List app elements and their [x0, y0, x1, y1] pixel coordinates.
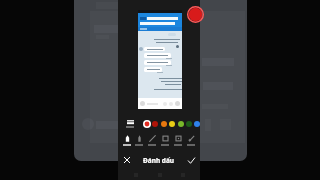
- button[interactable]: Nhãn dán: [171, 133, 184, 148]
- button[interactable]: Bút vẽ: [121, 133, 133, 148]
- button[interactable]: Navigation: [154, 169, 165, 180]
- button[interactable]: Hình vuông: [158, 133, 171, 148]
- button[interactable]: Colour: [158, 117, 170, 130]
- button[interactable]: Cancel: [121, 154, 133, 166]
- staticText: Đánh dấu: [143, 156, 175, 165]
- button[interactable]: Navigation: [130, 169, 141, 180]
- button[interactable]: Mũi tên: [145, 133, 158, 148]
- button[interactable]: Colour: [191, 117, 203, 130]
- button[interactable]: Colour: [149, 117, 161, 130]
- button[interactable]: Colour: [183, 117, 195, 130]
- button[interactable]: Done: [185, 154, 197, 166]
- button[interactable]: Bút dạ: [133, 133, 145, 148]
- button[interactable]: Colour: [141, 117, 153, 130]
- button[interactable]: Navigation: [177, 169, 188, 180]
- button[interactable]: Colour: [166, 117, 178, 130]
- button[interactable]: Cắt ảnh: [184, 133, 197, 148]
- button[interactable]: Stroke width: [122, 117, 138, 130]
- button[interactable]: Colour: [175, 117, 187, 130]
